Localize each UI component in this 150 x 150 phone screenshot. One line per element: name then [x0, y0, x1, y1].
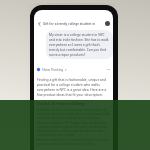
button[interactable]: More options: [106, 67, 111, 72]
staticText: Stylish & Practical Bags: [37, 101, 86, 107]
staticText: Gift for a trendy college student in: [43, 22, 96, 26]
button[interactable]: Show Thinking: [36, 67, 67, 72]
staticText: My sister is a college student in NYC an…: [49, 32, 110, 57]
staticText: v: [65, 68, 67, 72]
staticText: Show Thinking: [42, 68, 64, 72]
button[interactable]: Account: [105, 21, 110, 26]
button[interactable]: Back: [35, 20, 43, 28]
staticText: Finding a gift that is fashionable, uniq…: [37, 77, 111, 97]
